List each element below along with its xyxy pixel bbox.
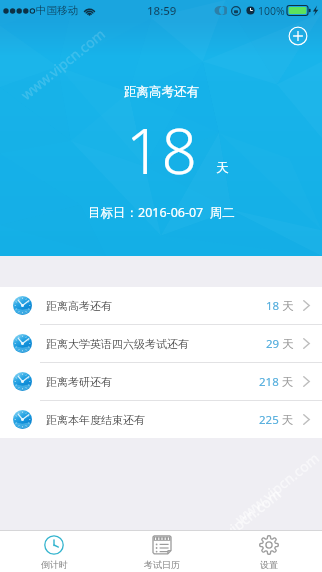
staticText: 距离大学英语四六级考试还有 (46, 337, 189, 351)
staticText: 距离高考还有 (124, 84, 199, 100)
staticText: 18:59 (147, 3, 177, 19)
staticText: 29 天 (266, 336, 294, 352)
staticText: 距离本年度结束还有 (46, 413, 145, 427)
staticText: 距离考研还有 (46, 375, 112, 389)
staticText: 目标日：2016-06-07 周二 (88, 204, 235, 221)
staticText: 设置 (260, 559, 278, 570)
button[interactable]: 距离本年度结束还有 (0, 401, 322, 438)
button[interactable]: 设置 (215, 531, 322, 572)
button[interactable]: 距离大学英语四六级考试还有 (0, 325, 322, 362)
staticText: 考试日历 (144, 559, 180, 570)
button[interactable]: 距离高考还有 (0, 287, 322, 324)
staticText: 倒计时 (41, 559, 68, 570)
button[interactable]: Add countdown (288, 26, 308, 46)
button[interactable]: 距离考研还有 (0, 363, 322, 400)
staticText: 100% (258, 4, 285, 18)
staticText: 18 天 (266, 298, 294, 314)
button[interactable]: 倒计时 (0, 531, 108, 572)
staticText: 天 (216, 160, 229, 176)
staticText: 距离高考还有 (46, 299, 112, 313)
staticText: 中国移动 (36, 4, 78, 17)
staticText: www.vipcn.com (17, 24, 108, 103)
staticText: 218 天 (259, 374, 294, 390)
staticText: 225 天 (259, 412, 294, 428)
staticText: 18 (126, 108, 197, 192)
staticText: www.vipcn.com (193, 484, 284, 563)
button[interactable]: 考试日历 (108, 531, 215, 572)
